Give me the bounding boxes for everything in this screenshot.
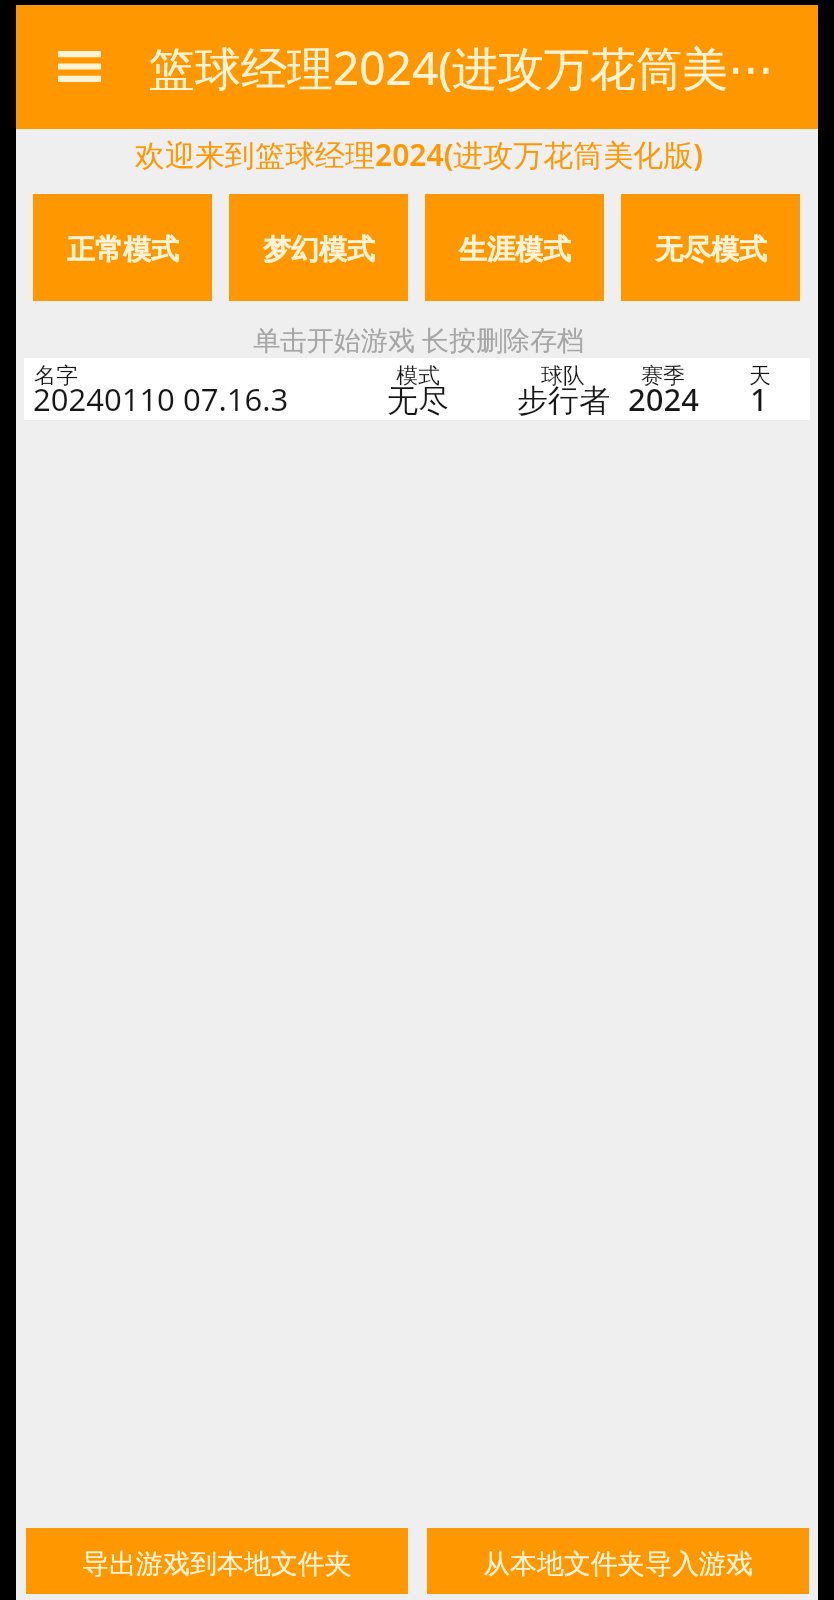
button[interactable]: Open navigation menu xyxy=(45,38,113,94)
staticText: 单击开始游戏 长按删除存档 xyxy=(253,321,585,358)
staticText: 无尽模式 xyxy=(655,232,767,267)
staticText: 导出游戏到本地文件夹 xyxy=(82,1547,352,1581)
button[interactable]: 正常模式 xyxy=(33,194,212,301)
staticText: 模式 xyxy=(396,362,440,390)
button[interactable]: 生涯模式 xyxy=(425,194,604,301)
staticText: 生涯模式 xyxy=(459,232,571,267)
staticText: 2024 xyxy=(628,378,699,420)
staticText: 无尽 xyxy=(387,381,449,420)
staticText: 从本地文件夹导入游戏 xyxy=(483,1547,753,1581)
button[interactable]: 导出游戏到本地文件夹 xyxy=(26,1528,408,1594)
staticText: 名字 xyxy=(34,362,78,390)
staticText: 欢迎来到篮球经理2024(进攻万花筒美化版) xyxy=(135,134,704,175)
staticText: 天 xyxy=(749,362,771,390)
staticText: 步行者 xyxy=(517,381,610,420)
staticText: 赛季 xyxy=(641,362,685,390)
staticText: 20240110 07.16.3 xyxy=(33,378,289,420)
staticText: 1 xyxy=(750,378,768,420)
button[interactable]: 名字 xyxy=(24,358,810,420)
button[interactable]: 梦幻模式 xyxy=(229,194,408,301)
staticText: 篮球经理2024(进攻万花筒美⋯ xyxy=(149,36,775,99)
staticText: 球队 xyxy=(541,362,585,390)
staticText: 梦幻模式 xyxy=(263,232,375,267)
button[interactable]: 无尽模式 xyxy=(621,194,800,301)
button[interactable]: 从本地文件夹导入游戏 xyxy=(427,1528,809,1594)
staticText: 正常模式 xyxy=(67,232,179,267)
